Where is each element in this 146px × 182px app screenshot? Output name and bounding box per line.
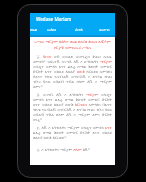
staticText: ሰኑይ	[30, 28, 38, 32]
button[interactable]: Wedase Mariam	[30, 13, 115, 25]
staticText: Wedase Mariam	[36, 16, 72, 22]
staticText: ሠሉስ	[47, 28, 56, 32]
staticText: ፩. በስመ አብ ወወልድ ወመንፈስ ቅዱስ አሐዱ አምላክ። ናአኩተኪ…	[33, 54, 112, 89]
staticText: ፫. ለኪ ኦ እግዝእትነ ማርያም ወላዲተ አምላክ እንተ ይእቲ ሰማ…	[33, 125, 112, 140]
staticText: ረቡዕ	[75, 28, 83, 32]
button[interactable]: ሐሙስ	[93, 25, 115, 35]
staticText: ውዳሴ ማርያም ዘዕለተ ሰኑይ ዘደረሰ ቅዱስ ኤፍሬም ሶርያዊ ወምስ…	[33, 39, 112, 51]
staticText: ሐሙስ	[99, 28, 110, 32]
staticText: ፪. ወናዓቢ ለኪ ኦ እግዝእትነ ማርያም ወላዲተ አምላክ እንተ ይ…	[33, 92, 112, 122]
staticText: ፬. ኦ እግዝእትነ ማርያም ሰላም ለኪ።	[33, 147, 112, 152]
button[interactable]: ረቡዕ	[65, 25, 93, 35]
button[interactable]: ሰኑይ	[30, 25, 38, 35]
button[interactable]: ሠሉስ	[38, 25, 65, 35]
